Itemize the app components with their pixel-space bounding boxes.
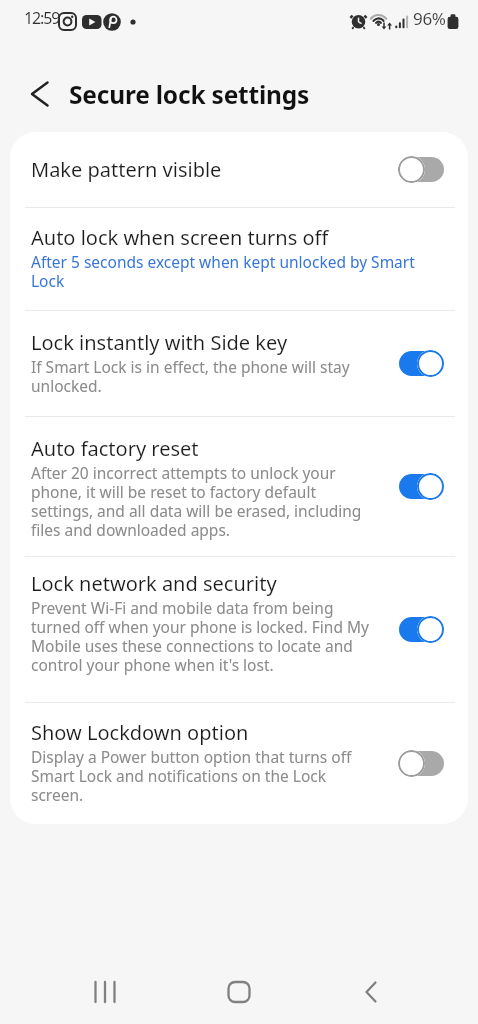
button[interactable]: Lock instantly with Side key (10, 311, 468, 416)
staticText: Prevent Wi-Fi and mobile data from being… (31, 597, 369, 675)
staticText: Lock instantly with Side key (31, 329, 288, 356)
staticText: Make pattern visible (31, 156, 222, 183)
button[interactable]: Make pattern visible (10, 132, 468, 207)
staticText: Show Lockdown option (31, 719, 249, 746)
staticText: After 20 incorrect attempts to unlock yo… (31, 462, 362, 540)
button[interactable]: Lock network and security (10, 557, 468, 702)
staticText: After 5 seconds except when kept unlocke… (31, 251, 415, 291)
staticText: 96% (413, 7, 446, 30)
button[interactable] (398, 750, 444, 777)
button[interactable] (398, 616, 444, 643)
staticText: 12:59 (24, 7, 60, 29)
button[interactable] (398, 156, 444, 183)
button[interactable] (398, 350, 444, 377)
staticText: Secure lock settings (69, 78, 310, 111)
button[interactable] (332, 960, 412, 1024)
staticText: Display a Power button option that turns… (31, 746, 352, 805)
button[interactable]: Auto lock when screen turns off (10, 208, 468, 310)
button[interactable] (13, 66, 69, 122)
staticText: If Smart Lock is in effect, the phone wi… (31, 356, 350, 396)
button[interactable]: Auto factory reset (10, 417, 468, 556)
staticText: Auto factory reset (31, 435, 199, 462)
button[interactable] (398, 473, 444, 500)
button[interactable] (199, 960, 279, 1024)
staticText: Auto lock when screen turns off (31, 224, 329, 251)
staticText: Lock network and security (31, 570, 277, 597)
button[interactable]: Show Lockdown option (10, 703, 468, 824)
button[interactable] (66, 960, 146, 1024)
